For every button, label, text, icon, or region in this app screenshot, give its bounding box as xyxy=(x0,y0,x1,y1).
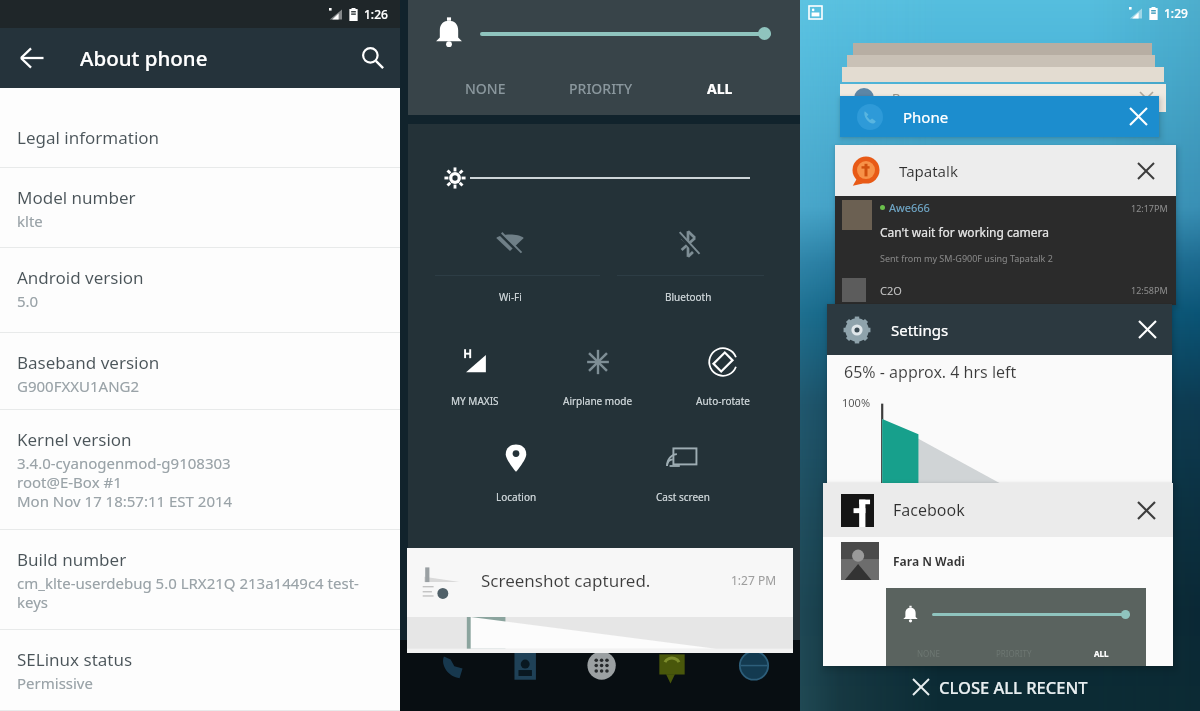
button[interactable]: Airplane mode xyxy=(542,328,654,424)
staticText: Settings xyxy=(891,320,949,340)
staticText: CLOSE ALL RECENT xyxy=(939,676,1088,698)
staticText: Android version xyxy=(17,266,144,289)
staticText: 1:26 xyxy=(364,6,388,22)
button[interactable]: Close Tapatalk xyxy=(1125,150,1166,191)
button[interactable]: Close Browser xyxy=(1132,84,1160,112)
staticText: MY MAXIS xyxy=(451,394,499,408)
staticText: Awe666 xyxy=(889,200,930,215)
button[interactable]: PRIORITY xyxy=(562,66,640,110)
staticText: Wi-Fi xyxy=(499,290,522,304)
button[interactable]: Location xyxy=(408,424,624,520)
staticText: 12:58PM xyxy=(1131,284,1168,296)
staticText: About phone xyxy=(80,44,208,72)
button[interactable]: Legal information xyxy=(0,108,400,168)
staticText: Can't wait for working camera xyxy=(880,224,1049,240)
staticText: NONE xyxy=(465,79,506,98)
staticText: Build number xyxy=(17,548,127,571)
staticText: klte xyxy=(17,211,43,231)
button[interactable]: CLOSE ALL RECENT xyxy=(897,672,1104,702)
staticText: ALL xyxy=(707,79,733,98)
button[interactable]: NONE xyxy=(408,66,562,110)
button[interactable]: ALL xyxy=(640,66,800,110)
staticText: 100% xyxy=(842,395,871,410)
staticText: Baseband version xyxy=(17,351,160,374)
staticText: 5.0 xyxy=(17,291,39,311)
button[interactable]: Model number xyxy=(0,168,400,248)
button[interactable]: Kernel version xyxy=(0,410,400,530)
button[interactable]: Settings xyxy=(827,304,1172,355)
staticText: Location xyxy=(496,490,537,504)
button[interactable]: Cast screen xyxy=(624,424,742,520)
staticText: 12:17PM xyxy=(1131,202,1168,214)
staticText: Bluetooth xyxy=(665,290,712,304)
staticText: Kernel version xyxy=(17,428,132,451)
staticText: Legal information xyxy=(17,126,160,149)
staticText: Browser xyxy=(892,89,943,107)
staticText: Screenshot captured. xyxy=(481,569,651,592)
staticText: Sent from my SM-G900F using Tapatalk 2 xyxy=(880,252,1053,264)
staticText: Airplane mode xyxy=(563,394,633,408)
button[interactable]: Close Phone xyxy=(1118,96,1159,137)
staticText: ALL xyxy=(1094,648,1109,659)
button[interactable]: Baseband version xyxy=(0,333,400,410)
staticText: Facebook xyxy=(893,499,965,521)
button[interactable]: Browser xyxy=(840,84,1166,112)
button[interactable]: Phone xyxy=(840,96,1159,137)
staticText: G900FXXU1ANG2 xyxy=(17,376,140,396)
staticText: Cast screen xyxy=(656,490,710,504)
button[interactable]: Screenshot captured. xyxy=(407,548,793,653)
button[interactable]: Bluetooth xyxy=(612,210,764,306)
staticText: PRIORITY xyxy=(569,79,633,98)
staticText: PRIORITY xyxy=(996,648,1032,659)
button[interactable]: Auto-rotate xyxy=(654,328,791,424)
staticText: Model number xyxy=(17,186,136,209)
staticText: 1:29 xyxy=(1164,5,1188,21)
staticText: 3.4.0-cyanogenmod-g9108303 root@E-Box #1… xyxy=(17,453,233,512)
staticText: Permissive xyxy=(17,673,93,693)
button[interactable]: Build number xyxy=(0,530,400,630)
staticText: NONE xyxy=(917,648,940,659)
staticText: C2O xyxy=(880,283,902,298)
staticText: SELinux status xyxy=(17,648,133,671)
button[interactable]: SELinux status xyxy=(0,630,400,711)
staticText: cm_klte-userdebug 5.0 LRX21Q 213a1449c4 … xyxy=(17,573,359,613)
button[interactable]: Tapatalk xyxy=(835,145,1176,196)
button[interactable]: MY MAXIS xyxy=(408,328,542,424)
button[interactable]: Close Settings xyxy=(1127,309,1168,350)
staticText: Fara N Wadi xyxy=(893,553,965,569)
staticText: 1:27 PM xyxy=(731,572,777,588)
button[interactable]: Wi-Fi xyxy=(408,210,612,306)
staticText: Phone xyxy=(903,107,949,127)
button[interactable]: Close Facebook xyxy=(1126,490,1167,531)
staticText: Auto-rotate xyxy=(696,394,750,408)
staticText: Tapatalk xyxy=(899,161,958,181)
staticText: 65% - approx. 4 hrs left xyxy=(844,361,1017,383)
button[interactable]: Facebook xyxy=(823,483,1173,537)
button[interactable]: Back xyxy=(0,28,60,88)
button[interactable]: Search xyxy=(340,28,400,88)
button[interactable]: Android version xyxy=(0,248,400,333)
